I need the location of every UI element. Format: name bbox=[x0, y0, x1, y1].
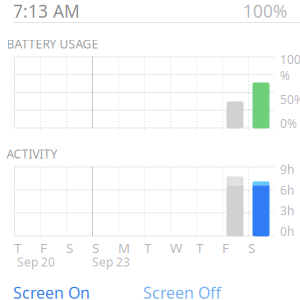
staticText: 6h bbox=[280, 182, 294, 198]
staticText: F bbox=[222, 239, 229, 257]
staticText: Screen On bbox=[13, 282, 90, 300]
staticText: T bbox=[196, 239, 203, 257]
staticText: BATTERY USAGE bbox=[6, 36, 98, 52]
staticText: ACTIVITY bbox=[6, 146, 57, 162]
button[interactable]: Screen On bbox=[13, 282, 143, 300]
staticText: S bbox=[66, 239, 73, 257]
staticText: F bbox=[40, 239, 47, 257]
staticText: 0h bbox=[280, 223, 294, 239]
staticText: 50% bbox=[280, 91, 300, 107]
staticText: 0% bbox=[280, 115, 297, 131]
staticText: 3h bbox=[280, 203, 294, 219]
staticText: Screen Off bbox=[143, 282, 221, 300]
staticText: 100% bbox=[280, 51, 300, 83]
button[interactable]: Screen Off bbox=[143, 282, 273, 300]
staticText: 9h bbox=[280, 161, 294, 177]
staticText: S bbox=[92, 239, 99, 257]
staticText: Sep 23 bbox=[92, 254, 130, 270]
staticText: M bbox=[118, 239, 130, 257]
staticText: Sep 20 bbox=[17, 254, 55, 270]
staticText: T bbox=[14, 239, 21, 257]
staticText: 7:13 AM bbox=[13, 0, 80, 22]
staticText: 100% bbox=[243, 0, 287, 22]
staticText: W bbox=[170, 239, 182, 257]
staticText: S bbox=[248, 239, 255, 257]
staticText: T bbox=[144, 239, 151, 257]
